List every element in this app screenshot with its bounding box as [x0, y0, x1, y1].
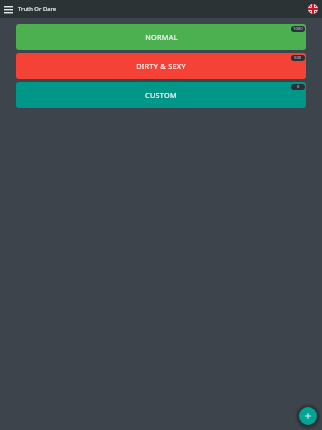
staticText: 500: [294, 55, 302, 61]
staticText: CUSTOM: [145, 90, 177, 100]
staticText: 0: [297, 84, 300, 90]
button[interactable]: Language: [307, 3, 318, 14]
staticText: NORMAL: [145, 32, 178, 42]
button[interactable]: Menu: [4, 3, 13, 16]
button[interactable]: DIRTY & SEXY: [16, 53, 306, 79]
staticText: Truth Or Dare: [18, 5, 57, 13]
button[interactable]: NORMAL: [16, 24, 306, 50]
staticText: 1000: [293, 26, 303, 32]
button[interactable]: Add: [299, 407, 317, 425]
staticText: DIRTY & SEXY: [136, 61, 186, 71]
button[interactable]: CUSTOM: [16, 82, 306, 108]
